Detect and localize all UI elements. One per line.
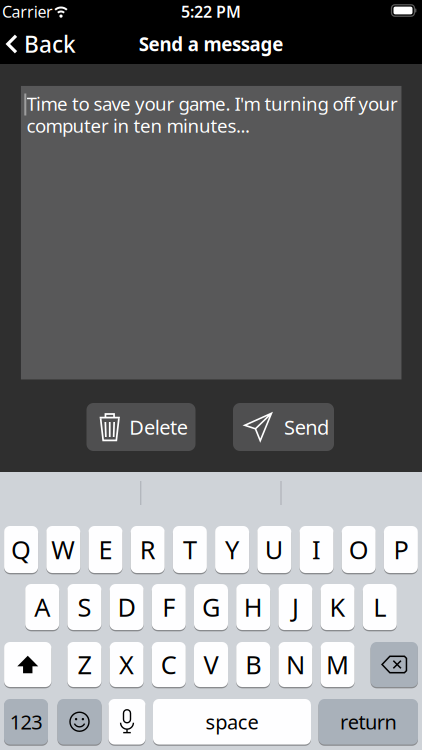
staticText: T [183,533,197,566]
button[interactable]: M [321,641,355,688]
staticText: L [373,590,386,624]
button[interactable]: B [236,641,270,688]
staticText: X [119,648,134,681]
staticText: D [118,590,136,624]
button[interactable]: I [299,525,333,574]
staticText: Time to save your game. I'm turning off … [26,91,398,116]
button[interactable]: T [173,525,207,574]
button[interactable]: Q [4,525,38,574]
button[interactable]: E [88,525,122,574]
button[interactable]: K [321,583,355,631]
button[interactable]: Delete [86,403,195,451]
staticText: W [51,533,75,566]
button[interactable]: space [153,698,311,745]
button[interactable]: return [318,698,418,745]
staticText: Back [24,29,76,59]
staticText: R [140,533,156,566]
button[interactable]: N [278,641,312,688]
staticText: A [34,590,50,624]
button[interactable]: A [25,583,59,631]
staticText: space [206,708,258,735]
button[interactable]: Backspace [371,641,418,688]
button[interactable]: F [152,583,186,631]
staticText: G [202,590,220,624]
staticText: I [312,533,321,566]
button[interactable]: Emoji [57,698,101,745]
staticText: J [292,590,299,624]
staticText: K [330,590,346,624]
staticText: N [286,648,305,681]
button[interactable]: Y [215,525,249,574]
button[interactable]: W [46,525,80,574]
button[interactable]: Shift [4,641,51,688]
button[interactable]: O [342,525,376,574]
button[interactable]: J [278,583,312,631]
button[interactable]: Z [67,641,101,688]
staticText: C [161,648,177,681]
button[interactable]: G [194,583,228,631]
staticText: P [393,533,408,566]
staticText: 5:22 PM [181,1,241,22]
button[interactable]: L [363,583,397,631]
staticText: Send [284,414,329,440]
button[interactable]: D [110,583,144,631]
staticText: E [98,533,112,566]
staticText: S [77,590,91,624]
button[interactable]: R [131,525,165,574]
staticText: computer in ten minutes... [26,113,250,138]
button[interactable]: V [194,641,228,688]
staticText: H [244,590,263,624]
button[interactable]: X [110,641,144,688]
staticText: Q [11,533,31,566]
button[interactable]: Back [6,23,76,65]
staticText: Y [225,533,239,566]
button[interactable]: Send [233,403,334,451]
staticText: M [326,648,349,681]
staticText: F [162,590,175,624]
staticText: Delete [129,414,188,440]
button[interactable]: U [257,525,291,574]
button[interactable]: Message text [21,86,401,379]
button[interactable]: H [236,583,270,631]
button[interactable]: P [384,525,418,574]
staticText: U [265,533,284,566]
staticText: Z [77,648,91,681]
staticText: Carrier [2,1,53,22]
button[interactable]: S [67,583,101,631]
button[interactable]: Numbers [4,698,48,745]
staticText: V [203,648,218,681]
button[interactable]: C [152,641,186,688]
button[interactable]: Dictate [108,698,145,745]
staticText: O [349,533,369,566]
staticText: Send a message [139,32,283,56]
staticText: return [340,708,396,735]
staticText: B [245,648,261,681]
staticText: 123 [10,708,42,735]
